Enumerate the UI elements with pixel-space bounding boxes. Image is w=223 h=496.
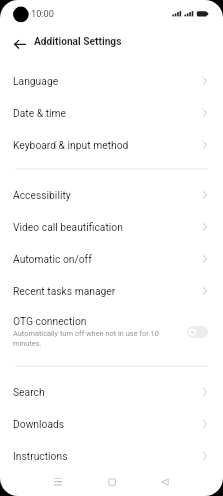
button[interactable]: Instructions [0, 440, 223, 472]
button[interactable]: Date & time [0, 97, 223, 129]
button[interactable]: Accessibility [0, 179, 223, 211]
staticText: Search [13, 386, 200, 398]
staticText: Additional Settings [34, 36, 122, 48]
button[interactable]: Recent tasks manager [0, 275, 223, 307]
staticText: Date & time [13, 107, 200, 119]
staticText: Instructions [13, 450, 200, 462]
staticText: 10:00 [31, 8, 54, 19]
staticText: Automatic on/off [13, 253, 200, 265]
button[interactable]: Video call beautification [0, 211, 223, 243]
button[interactable]: Automatic on/off [0, 243, 223, 275]
staticText: Accessibility [13, 189, 200, 201]
button[interactable]: Keyboard & input method [0, 129, 223, 161]
button[interactable]: Back [151, 468, 179, 496]
button[interactable]: Back [6, 31, 32, 57]
staticText: Automatically turn off when not in use f… [13, 329, 161, 348]
button[interactable]: Language [0, 65, 223, 97]
button[interactable]: Recent apps [44, 468, 72, 496]
staticText: Downloads [13, 418, 200, 430]
button[interactable]: Downloads [0, 408, 223, 440]
button[interactable]: Home [98, 468, 126, 496]
button[interactable]: Search [0, 376, 223, 408]
staticText: OTG connection [13, 315, 87, 327]
staticText: Language [13, 75, 200, 87]
button[interactable]: OTG connection [0, 311, 223, 355]
button[interactable]: OTG connection toggle [187, 326, 208, 338]
staticText: Keyboard & input method [13, 139, 200, 151]
staticText: Recent tasks manager [13, 285, 200, 297]
staticText: Video call beautification [13, 221, 200, 233]
